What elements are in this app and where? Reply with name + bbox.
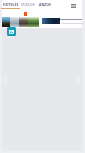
button[interactable] — [2, 17, 10, 27]
button[interactable]: Menu — [69, 1, 78, 10]
staticText: ANZOS — [39, 2, 52, 7]
button[interactable]: ANZOS — [37, 0, 53, 11]
button[interactable]: Photos — [7, 27, 16, 36]
button[interactable] — [28, 17, 39, 27]
staticText: VUELOS — [21, 2, 35, 7]
staticText: HOTELES — [3, 2, 19, 7]
button[interactable]: VUELOS — [21, 0, 35, 11]
button[interactable] — [19, 17, 28, 27]
button[interactable]: HOTELES — [1, 0, 20, 11]
button[interactable] — [10, 17, 19, 27]
